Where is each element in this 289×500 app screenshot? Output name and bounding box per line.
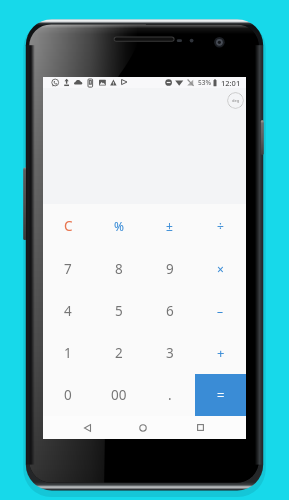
button[interactable]: 4 [43,290,93,332]
button[interactable]: Home [117,416,169,439]
button[interactable]: 0 [43,374,93,416]
staticText: 9 [166,260,174,278]
staticText: deg [232,98,240,103]
staticText: 3 [166,344,174,362]
staticText: % [114,218,124,234]
staticText: C [64,217,73,235]
button[interactable]: Back [61,416,113,439]
staticText: ÷ [217,218,224,234]
button[interactable]: 2 [93,332,144,374]
staticText: 5 [115,302,123,320]
button[interactable]: ± [144,204,195,247]
button[interactable]: 00 [93,374,144,416]
staticText: 53% [198,78,211,87]
button[interactable]: 1 [43,332,93,374]
staticText: 12:01 [221,78,241,88]
staticText: – [217,303,224,319]
button[interactable]: + [195,332,246,374]
staticText: . [168,386,172,404]
button[interactable]: = [195,374,246,416]
button[interactable]: 9 [144,247,195,290]
staticText: 1 [64,344,72,362]
button[interactable]: . [144,374,195,416]
staticText: = [217,386,225,404]
button[interactable]: 5 [93,290,144,332]
button[interactable]: 3 [144,332,195,374]
button[interactable]: 6 [144,290,195,332]
button[interactable]: – [195,290,246,332]
staticText: 2 [115,344,123,362]
staticText: 4 [64,302,72,320]
staticText: 7 [64,260,72,278]
staticText: 0 [64,386,72,404]
staticText: 6 [166,302,174,320]
staticText: 8 [115,260,123,278]
staticText: × [217,261,224,277]
staticText: + [217,344,225,362]
button[interactable]: × [195,247,246,290]
button[interactable]: Recent apps [174,416,226,439]
button[interactable]: Angle unit degrees [227,92,244,109]
button[interactable]: 7 [43,247,93,290]
button[interactable]: % [93,204,144,247]
button[interactable]: C [43,204,93,247]
button[interactable]: ÷ [195,204,246,247]
button[interactable]: 8 [93,247,144,290]
staticText: ± [166,218,173,234]
staticText: 00 [111,386,127,404]
